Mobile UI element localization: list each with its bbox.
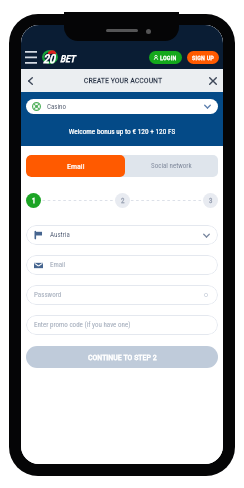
- button[interactable]: LOGIN: [149, 51, 182, 64]
- button[interactable]: CONTINUE TO STEP 2: [26, 346, 218, 368]
- button[interactable]: Email: [26, 155, 125, 177]
- button[interactable]: SIGN UP: [187, 51, 219, 64]
- staticText: Casino: [47, 103, 67, 111]
- staticText: Enter promo code (if you have one): [34, 321, 131, 329]
- staticText: Email: [50, 261, 66, 269]
- button[interactable]: Enter promo code (if you have one): [26, 315, 218, 335]
- staticText: LOGIN: [160, 54, 177, 61]
- button[interactable]: Back: [21, 72, 39, 90]
- staticText: 3: [209, 197, 213, 205]
- staticText: CONTINUE TO STEP 2: [88, 353, 157, 362]
- button[interactable]: 3: [203, 193, 218, 208]
- staticText: CREATE YOUR ACCOUNT: [43, 76, 203, 85]
- staticText: Austria: [50, 231, 70, 239]
- staticText: 20: [43, 52, 55, 66]
- button[interactable]: Password: [26, 285, 218, 305]
- staticText: Social network: [151, 162, 192, 170]
- button[interactable]: 2: [115, 193, 130, 208]
- staticText: 2: [121, 197, 125, 205]
- staticText: SIGN UP: [192, 54, 214, 61]
- button[interactable]: Austria: [26, 225, 218, 245]
- staticText: Email: [67, 162, 85, 171]
- staticText: 1: [32, 197, 36, 205]
- button[interactable]: Casino: [26, 99, 218, 114]
- button[interactable]: Email: [26, 255, 218, 275]
- button[interactable]: Close: [204, 72, 222, 90]
- button[interactable]: Social network: [125, 155, 218, 177]
- staticText: Welcome bonus up to € 120 + 120 FS: [21, 127, 223, 136]
- button[interactable]: 1: [26, 193, 41, 208]
- staticText: Password: [34, 291, 62, 299]
- staticText: BET: [60, 53, 75, 64]
- button[interactable]: Open navigation menu: [21, 47, 42, 65]
